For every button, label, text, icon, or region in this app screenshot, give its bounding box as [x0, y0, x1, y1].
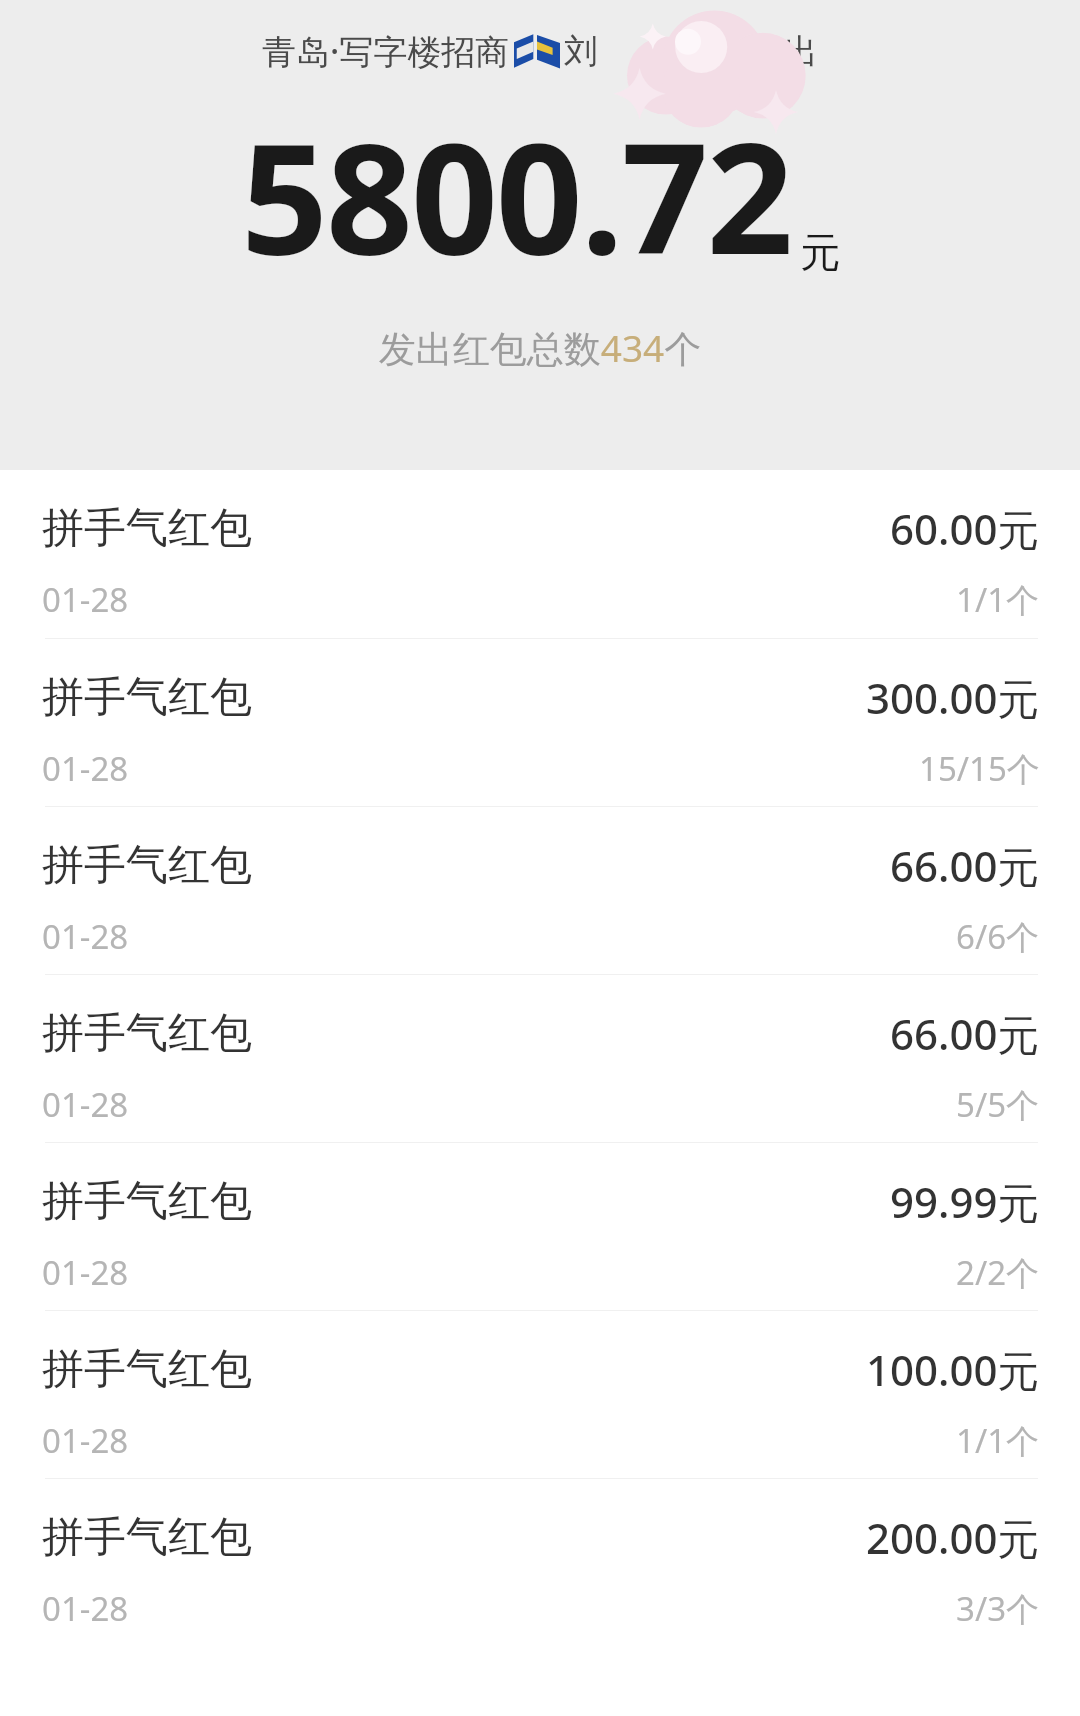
staticText: 200.00元 — [866, 1509, 1040, 1566]
staticText: 100.00元 — [866, 1341, 1040, 1398]
staticText: 99.99元 — [890, 1173, 1040, 1230]
staticText: 1/1个 — [956, 577, 1040, 622]
staticText: 共发出 — [716, 30, 818, 73]
staticText: 拼手气红包 — [42, 1511, 252, 1564]
staticText: 5/5个 — [956, 1082, 1040, 1127]
staticText: 01-28 — [42, 914, 129, 959]
staticText: 5800.72 — [241, 92, 792, 299]
staticText: 拼手气红包 — [42, 1343, 252, 1396]
staticText: 01-28 — [42, 746, 129, 791]
button[interactable]: 拼手气红包 — [0, 974, 1080, 1142]
staticText: 6/6个 — [956, 914, 1040, 959]
staticText: 拼手气红包 — [42, 1175, 252, 1228]
button[interactable]: 拼手气红包 — [0, 1478, 1080, 1646]
staticText: 拼手气红包 — [42, 502, 252, 555]
staticText: 刘 — [564, 30, 598, 73]
staticText: 300.00元 — [866, 669, 1040, 726]
staticText: 01-28 — [42, 1082, 129, 1127]
staticText: 1/1个 — [956, 1418, 1040, 1463]
staticText: 01-28 — [42, 1418, 129, 1463]
staticText: 拼手气红包 — [42, 671, 252, 724]
button[interactable]: 拼手气红包 — [0, 638, 1080, 806]
button[interactable]: 拼手气红包 — [0, 1310, 1080, 1478]
staticText: 拼手气红包 — [42, 839, 252, 892]
staticText: 青岛·写字楼招商 — [262, 28, 510, 74]
button[interactable]: 拼手气红包 — [0, 806, 1080, 974]
staticText: 66.00元 — [890, 1005, 1040, 1062]
staticText: 发出红包总数434个 — [0, 322, 1080, 373]
button[interactable]: 拼手气红包 — [0, 1142, 1080, 1310]
button[interactable]: 拼手气红包 — [0, 470, 1080, 638]
staticText: 01-28 — [42, 1250, 129, 1295]
staticText: 15/15个 — [919, 746, 1040, 791]
staticText: 拼手气红包 — [42, 1007, 252, 1060]
staticText: 60.00元 — [890, 500, 1040, 557]
staticText: 01-28 — [42, 577, 129, 622]
staticText: 01-28 — [42, 1586, 129, 1631]
staticText: 3/3个 — [956, 1586, 1040, 1631]
staticText: 2/2个 — [956, 1250, 1040, 1295]
staticText: 元 — [800, 227, 840, 277]
staticText: 66.00元 — [890, 837, 1040, 894]
